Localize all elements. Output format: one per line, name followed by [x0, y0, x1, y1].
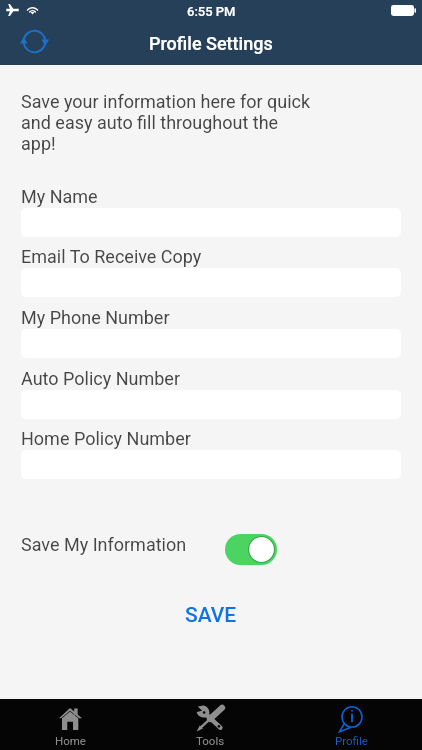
staticText: My Phone Number — [21, 307, 170, 328]
staticText: Profile Settings — [149, 33, 273, 54]
staticText: Tools — [196, 734, 225, 747]
button[interactable]: Profile — [281, 699, 422, 750]
button[interactable]: SAVE — [166, 597, 256, 633]
button[interactable]: Refresh — [21, 28, 48, 55]
button[interactable]: Save My Information — [225, 534, 277, 565]
staticText: SAVE — [185, 603, 237, 628]
staticText: Save your information here for quick and… — [21, 91, 316, 154]
button[interactable]: Tools — [140, 699, 281, 750]
staticText: Home Policy Number — [21, 428, 191, 449]
staticText: Profile — [335, 734, 368, 747]
staticText: Save My Information — [21, 534, 187, 555]
staticText: Auto Policy Number — [21, 368, 180, 389]
staticText: Home — [55, 734, 86, 747]
staticText: 6:55 PM — [187, 4, 236, 19]
button[interactable]: Home — [0, 699, 140, 750]
staticText: Email To Receive Copy — [21, 246, 202, 267]
staticText: My Name — [21, 186, 98, 207]
